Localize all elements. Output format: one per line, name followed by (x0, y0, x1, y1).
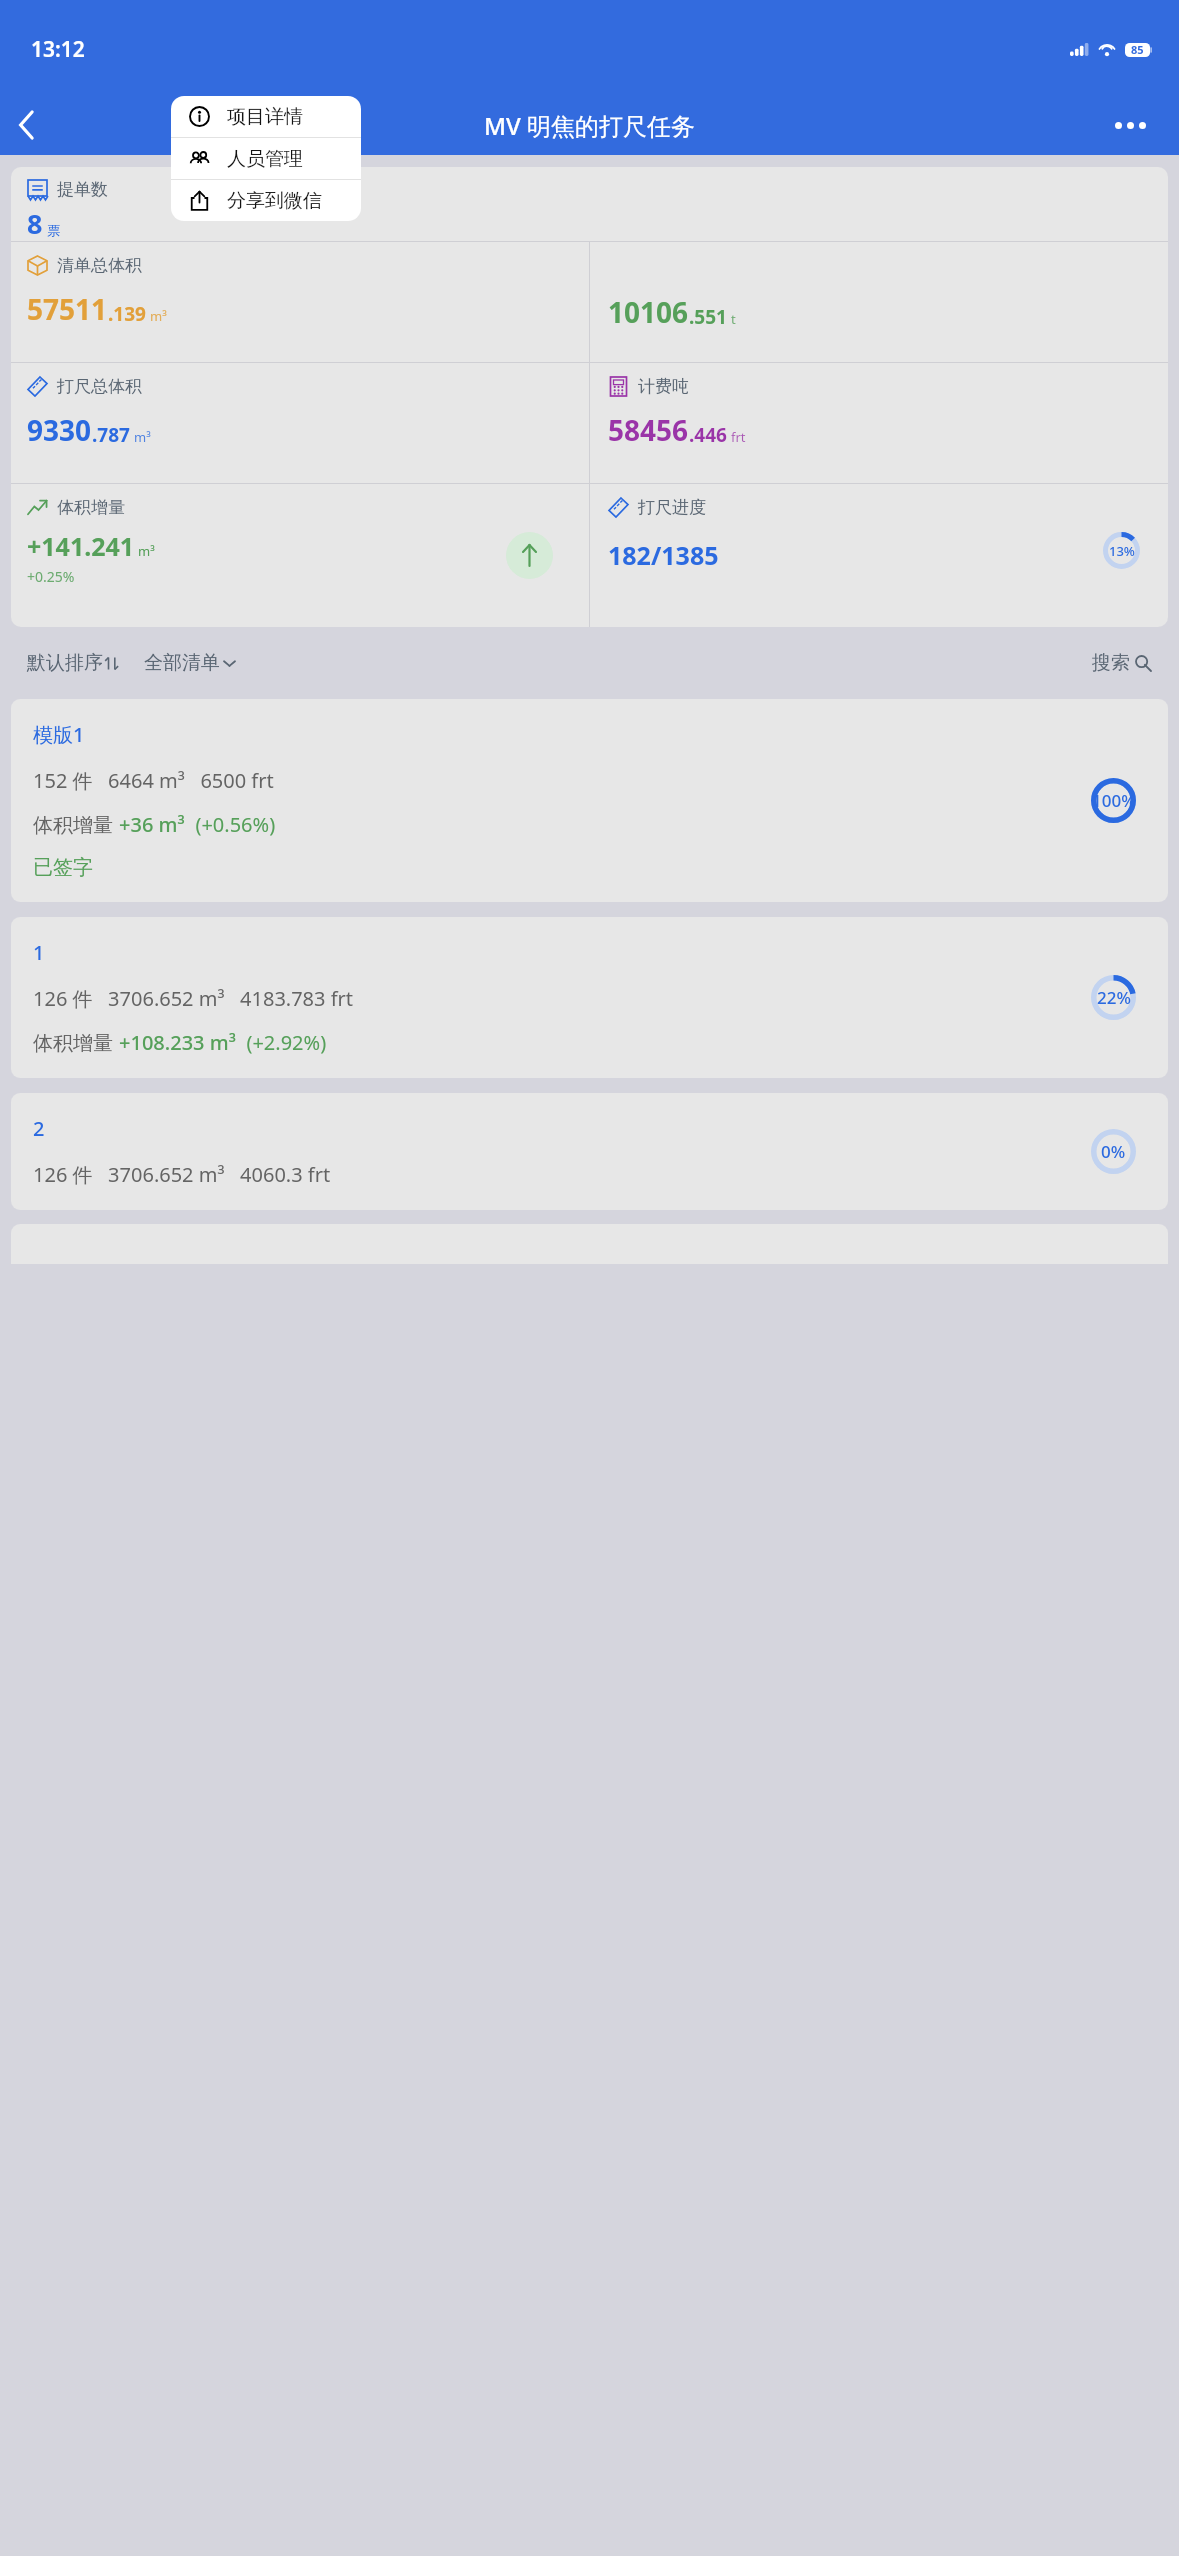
staticText: 模版1 (33, 721, 85, 748)
staticText: +36 m³ (119, 811, 185, 838)
staticText: 2 (33, 1115, 45, 1142)
staticText: 0% (1101, 1140, 1126, 1163)
staticText: m³ (134, 428, 151, 446)
staticText: 计费吨 (638, 376, 689, 397)
staticText: 打尺进度 (638, 497, 706, 518)
button[interactable]: 全部清单 (140, 647, 239, 679)
staticText: 默认排序 (27, 651, 103, 675)
button[interactable]: 提单数 (11, 167, 1168, 241)
button[interactable]: 打尺进度 (590, 484, 1168, 627)
button[interactable]: 模版1 (11, 699, 1168, 902)
button[interactable]: 搜索 (1088, 647, 1156, 679)
button[interactable]: 默认排序 (23, 647, 122, 679)
staticText: t (731, 310, 736, 328)
staticText: 10106 (608, 293, 689, 331)
staticText: 体积增量 (57, 497, 125, 518)
staticText: +108.233 m³ (119, 1029, 236, 1056)
button[interactable]: 体积增量 (11, 484, 589, 627)
staticText: 清单总体积 (57, 255, 142, 276)
button[interactable]: More options (1103, 103, 1157, 147)
staticText: 100% (1092, 789, 1136, 812)
staticText: (+2.92%) (236, 1029, 327, 1056)
staticText: .787 (92, 422, 130, 448)
staticText: 9330 (27, 411, 92, 449)
staticText: 打尺总体积 (57, 376, 142, 397)
staticText: frt (731, 428, 746, 446)
button[interactable]: 计费吨 (590, 363, 1168, 483)
staticText: 13:12 (31, 35, 85, 64)
staticText: 57511 (27, 290, 108, 328)
staticText: +141.241 (27, 529, 135, 563)
button[interactable]: Back (0, 98, 54, 152)
staticText: 票 (47, 222, 60, 238)
staticText: .139 (108, 301, 146, 327)
staticText: 1 (33, 939, 45, 966)
staticText: 22% (1097, 986, 1131, 1009)
button[interactable]: 1 (11, 917, 1168, 1078)
staticText: 项目详情 (227, 105, 303, 129)
button[interactable]: 分享到微信 (171, 180, 361, 221)
button[interactable]: 项目详情 (171, 96, 361, 137)
staticText: m³ (150, 307, 167, 325)
button[interactable]: 2 (11, 1093, 1168, 1210)
staticText: .551 (689, 304, 727, 330)
staticText: 提单数 (57, 179, 108, 200)
staticText: 13% (1109, 542, 1135, 560)
staticText: +0.25% (27, 567, 75, 586)
button[interactable]: 人员管理 (171, 138, 361, 179)
staticText: 8 (27, 205, 43, 241)
staticText: 体积增量 (33, 1029, 119, 1056)
staticText: .446 (689, 422, 727, 448)
button[interactable]: 打尺总体积 (11, 363, 589, 483)
button[interactable]: 清单总体积 (11, 242, 589, 362)
staticText: 已签字 (33, 855, 93, 880)
staticText: 分享到微信 (227, 189, 322, 213)
button[interactable]: 10106 (590, 242, 1168, 362)
staticText: 152 件 6464 m³ 6500 frt (33, 767, 274, 794)
staticText: 体积增量 (33, 811, 119, 838)
staticText: 全部清单 (144, 651, 220, 675)
staticText: 85 (1131, 42, 1144, 57)
staticText: 126 件 3706.652 m³ 4183.783 frt (33, 985, 354, 1012)
staticText: 126 件 3706.652 m³ 4060.3 frt (33, 1161, 331, 1188)
staticText: 182/1385 (608, 538, 719, 572)
staticText: 人员管理 (227, 147, 303, 171)
staticText: (+0.56%) (185, 811, 276, 838)
staticText: 搜索 (1092, 651, 1130, 675)
staticText: 58456 (608, 411, 689, 449)
staticText: MV 明焦的打尺任务 (484, 109, 696, 142)
staticText: m³ (138, 542, 155, 560)
